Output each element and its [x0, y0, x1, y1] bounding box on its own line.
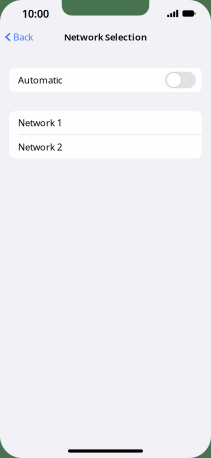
button[interactable]: Network 2: [9, 135, 202, 158]
staticText: Network 1: [18, 116, 62, 129]
button[interactable]: Back: [1, 28, 38, 46]
staticText: Network 2: [18, 141, 62, 153]
staticText: 10:00: [22, 6, 49, 21]
button[interactable]: Automatic: [9, 68, 202, 92]
button[interactable]: Network 1: [9, 111, 202, 134]
staticText: Automatic: [18, 74, 62, 86]
staticText: Network Selection: [64, 31, 147, 43]
staticText: Back: [13, 31, 33, 43]
